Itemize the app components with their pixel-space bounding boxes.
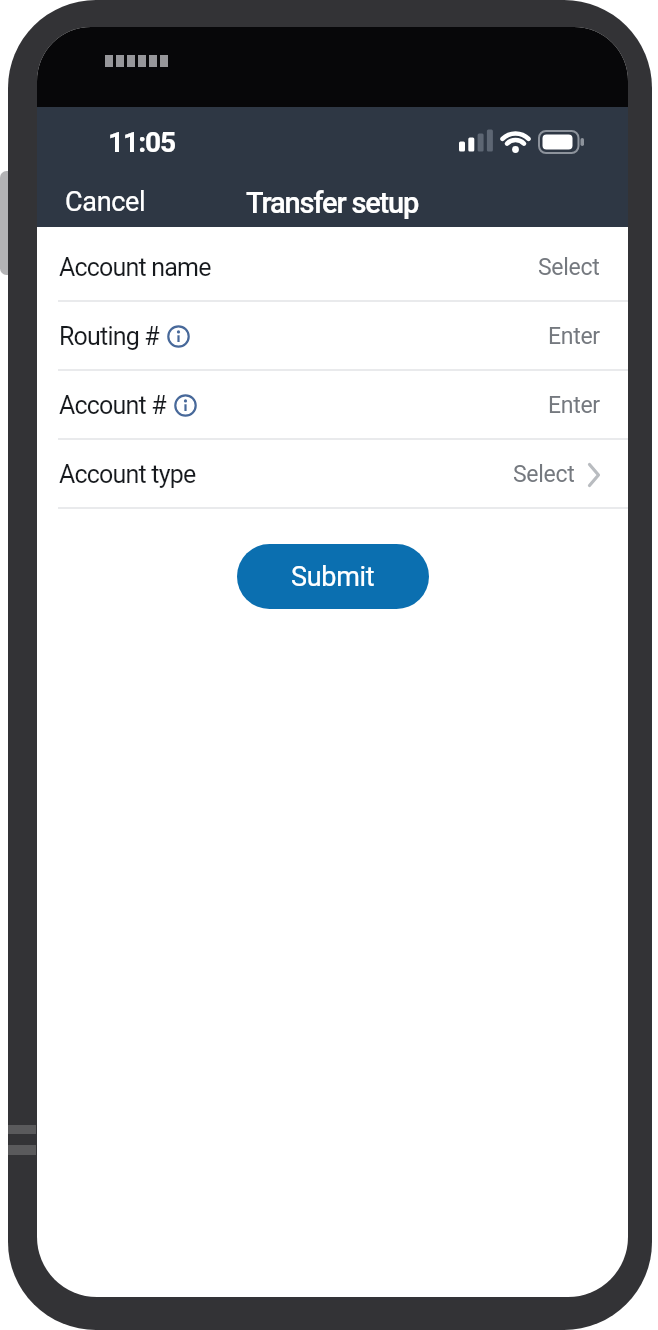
staticText: Submit (291, 561, 375, 593)
button[interactable]: Cancel (51, 175, 160, 229)
button[interactable]: Account name (37, 227, 628, 300)
staticText: Transfer setup (246, 186, 419, 220)
staticText: Cancel (65, 186, 146, 218)
staticText: Enter (548, 392, 600, 419)
button[interactable]: Routing # (37, 302, 628, 369)
staticText: Select (538, 254, 600, 281)
staticText: Account name (59, 253, 211, 282)
button[interactable]: Account type (37, 440, 628, 507)
staticText: Routing # (59, 322, 159, 351)
staticText: Enter (548, 323, 600, 350)
staticText: Select (513, 461, 575, 488)
button[interactable]: Submit (237, 544, 429, 609)
staticText: Account type (59, 460, 196, 489)
button[interactable]: Account # (37, 371, 628, 438)
staticText: 11:05 (108, 126, 176, 159)
staticText: Account # (59, 391, 166, 420)
